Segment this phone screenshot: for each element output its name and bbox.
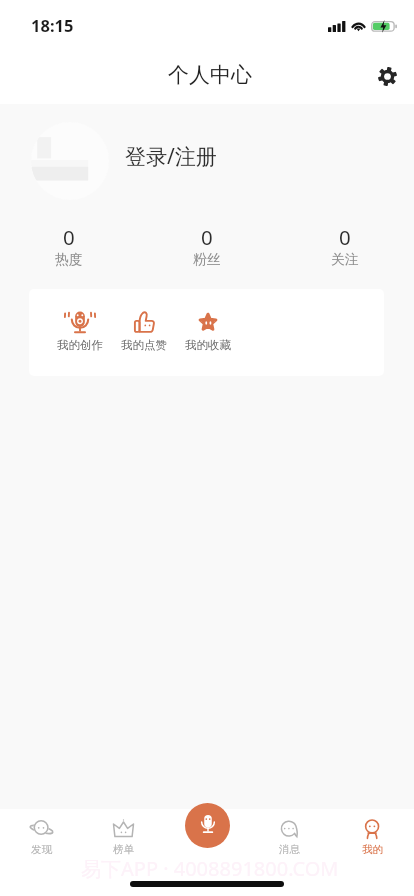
staticText: 粉丝 <box>193 251 221 268</box>
button[interactable]: 我的 <box>331 820 414 856</box>
staticText: 18:15 <box>31 14 74 36</box>
staticText: 0 <box>201 223 213 251</box>
staticText: 登录/注册 <box>125 142 217 171</box>
staticText: 关注 <box>331 251 359 268</box>
button[interactable]: 发现 <box>0 820 82 856</box>
staticText: 个人中心 <box>168 62 252 88</box>
button[interactable]: 我的创作 <box>48 309 112 352</box>
staticText: 消息 <box>279 843 300 856</box>
staticText: 发现 <box>31 843 52 856</box>
button[interactable]: 消息 <box>248 820 331 856</box>
staticText: 榜单 <box>113 843 134 856</box>
button[interactable]: 0 <box>0 223 138 268</box>
staticText: 我的创作 <box>57 338 103 352</box>
staticText: 我的点赞 <box>121 338 167 352</box>
button[interactable]: 我的收藏 <box>176 309 240 352</box>
staticText: 我的 <box>362 843 383 856</box>
button[interactable]: 我的点赞 <box>112 309 176 352</box>
button[interactable]: Settings <box>366 55 408 97</box>
staticText: 0 <box>339 223 351 251</box>
staticText: 我的收藏 <box>185 338 231 352</box>
staticText: 易下APP · 4008891800.COM <box>81 855 339 882</box>
button[interactable]: 0 <box>276 223 414 268</box>
button[interactable]: 0 <box>138 223 276 268</box>
button[interactable]: Record <box>185 803 230 848</box>
staticText: 热度 <box>55 251 83 268</box>
button[interactable]: 登录/注册 <box>31 122 217 200</box>
staticText: 0 <box>63 223 75 251</box>
button[interactable]: 榜单 <box>82 820 165 856</box>
